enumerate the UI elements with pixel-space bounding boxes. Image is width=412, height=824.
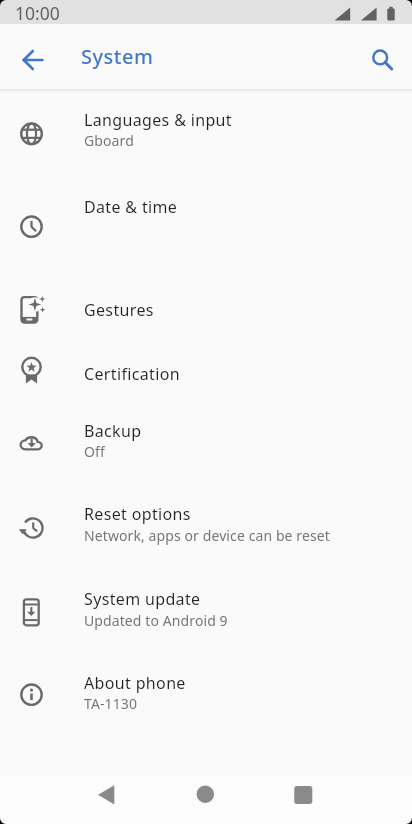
button[interactable]: Languages & input xyxy=(0,90,412,174)
button[interactable] xyxy=(279,771,327,819)
button[interactable]: System update xyxy=(0,569,412,653)
button[interactable]: Date & time xyxy=(0,174,412,258)
button[interactable] xyxy=(181,771,229,819)
staticText: 10:00 xyxy=(15,1,60,25)
button[interactable] xyxy=(82,771,130,819)
staticText: Network, apps or device can be reset xyxy=(84,526,330,545)
button[interactable]: Backup xyxy=(0,401,412,485)
button[interactable]: Gestures xyxy=(0,272,412,336)
staticText: Backup xyxy=(84,420,142,442)
staticText: System xyxy=(81,43,154,70)
staticText: Certification xyxy=(84,363,180,385)
staticText: System update xyxy=(84,588,201,610)
button[interactable]: About phone xyxy=(0,653,412,737)
button[interactable] xyxy=(9,36,57,84)
staticText: About phone xyxy=(84,672,186,694)
staticText: Date & time xyxy=(84,196,178,218)
staticText: Off xyxy=(84,442,105,461)
staticText: Updated to Android 9 xyxy=(84,611,228,630)
button[interactable] xyxy=(358,36,406,84)
staticText: Gboard xyxy=(84,131,134,150)
staticText: Languages & input xyxy=(84,109,232,131)
staticText: Gestures xyxy=(84,299,154,321)
staticText: TA-1130 xyxy=(84,694,137,713)
staticText: Reset options xyxy=(84,503,191,525)
button[interactable]: Reset options xyxy=(0,485,412,569)
button[interactable]: Certification xyxy=(0,336,412,400)
